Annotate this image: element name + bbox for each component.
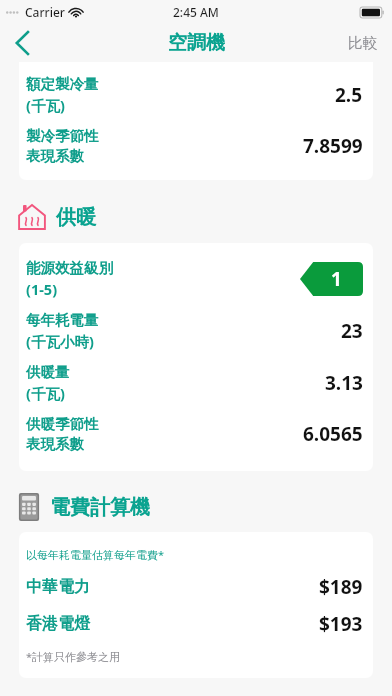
- staticText: 香港電燈: [26, 614, 319, 634]
- button[interactable]: 比較: [334, 28, 392, 59]
- staticText: *計算只作參考之用: [26, 649, 121, 664]
- button[interactable]: Back: [0, 24, 44, 62]
- staticText: 1: [331, 266, 342, 292]
- staticText: 7.8599: [303, 133, 363, 159]
- staticText: 空調機: [168, 31, 225, 55]
- staticText: 每年耗電量: [26, 311, 99, 329]
- staticText: 供暖季節性: [26, 415, 99, 433]
- staticText: (千瓦小時): [26, 331, 94, 351]
- staticText: 供暖: [56, 205, 96, 230]
- staticText: 比較: [348, 34, 378, 53]
- staticText: 6.0565: [303, 421, 363, 447]
- staticText: $189: [319, 574, 363, 600]
- staticText: Carrier: [25, 4, 65, 20]
- staticText: 以每年耗電量估算每年電費*: [26, 547, 165, 562]
- button[interactable]: 香港電燈: [26, 611, 366, 637]
- button[interactable]: 中華電力: [26, 574, 366, 600]
- staticText: 電費計算機: [50, 495, 150, 520]
- staticText: 額定製冷量: [26, 75, 99, 93]
- button[interactable]: 供暖季節性: [19, 409, 373, 459]
- staticText: 製冷季節性: [26, 127, 99, 145]
- button[interactable]: 能源效益級別: [19, 253, 373, 305]
- staticText: 3.13: [325, 370, 363, 396]
- button[interactable]: 供暖量: [19, 357, 373, 409]
- staticText: 表現系數: [26, 435, 84, 453]
- staticText: $193: [319, 611, 363, 637]
- staticText: (1-5): [26, 279, 58, 299]
- staticText: 中華電力: [26, 577, 319, 597]
- staticText: 23: [341, 318, 363, 344]
- staticText: 2:45 AM: [173, 4, 219, 20]
- button[interactable]: 每年耗電量: [19, 305, 373, 357]
- staticText: 供暖量: [26, 363, 70, 381]
- staticText: 2.5: [335, 82, 363, 108]
- staticText: (千瓦): [26, 383, 65, 403]
- staticText: 能源效益級別: [26, 259, 113, 277]
- staticText: 表現系數: [26, 147, 84, 165]
- button[interactable]: 製冷季節性: [19, 121, 373, 171]
- staticText: (千瓦): [26, 95, 65, 115]
- button[interactable]: 額定製冷量: [19, 62, 373, 121]
